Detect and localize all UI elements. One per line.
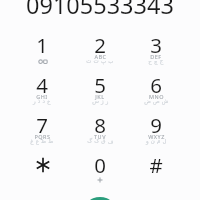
staticText: JKL xyxy=(95,93,105,100)
staticText: DEF xyxy=(150,53,162,60)
staticText: PQRS xyxy=(34,133,51,140)
button[interactable]: Key 8 xyxy=(72,106,128,146)
staticText: 0 xyxy=(94,151,106,177)
staticText: 7 xyxy=(36,111,48,137)
staticText: 1 xyxy=(36,31,48,57)
staticText: ط ظ ع غ xyxy=(30,137,54,144)
staticText: 9 xyxy=(150,111,162,137)
staticText: # xyxy=(149,151,163,177)
staticText: 09105533343 xyxy=(26,0,174,21)
staticText: 2 xyxy=(94,31,106,57)
staticText: ف ق ک گ xyxy=(87,137,114,144)
staticText: 4 xyxy=(36,71,48,97)
staticText: ز ژ س xyxy=(92,97,109,104)
button[interactable]: Key 2 xyxy=(72,26,128,66)
button[interactable]: Key 9 xyxy=(128,106,184,146)
button[interactable]: Key 3 xyxy=(128,26,184,66)
button[interactable]: Key 0 xyxy=(72,146,128,186)
staticText: 3 xyxy=(150,31,162,57)
button[interactable]: Key 5 xyxy=(72,66,128,106)
button[interactable]: Key 7 xyxy=(14,106,70,146)
staticText: 8 xyxy=(94,111,106,137)
staticText: GHI xyxy=(36,93,48,100)
staticText: 6 xyxy=(150,71,162,97)
staticText: ABC xyxy=(94,53,107,60)
staticText: MNO xyxy=(149,93,164,100)
button[interactable]: Key # xyxy=(128,146,184,186)
button[interactable]: Key 4 xyxy=(14,66,70,106)
button[interactable]: Call xyxy=(82,197,118,200)
staticText: WXYZ xyxy=(148,133,165,140)
staticText: ل م ن و xyxy=(146,137,167,144)
staticText: TUV xyxy=(94,133,106,140)
staticText: ب پ ت ث xyxy=(86,57,114,64)
staticText: ج چ ح xyxy=(148,57,164,64)
staticText: خ د ذ ر xyxy=(33,97,51,104)
button[interactable]: Key 6 xyxy=(128,66,184,106)
staticText: 5 xyxy=(94,71,106,97)
staticText: ش ص ض xyxy=(144,97,169,104)
button[interactable]: Key 1 xyxy=(14,26,70,66)
button[interactable]: Key * xyxy=(14,146,70,186)
